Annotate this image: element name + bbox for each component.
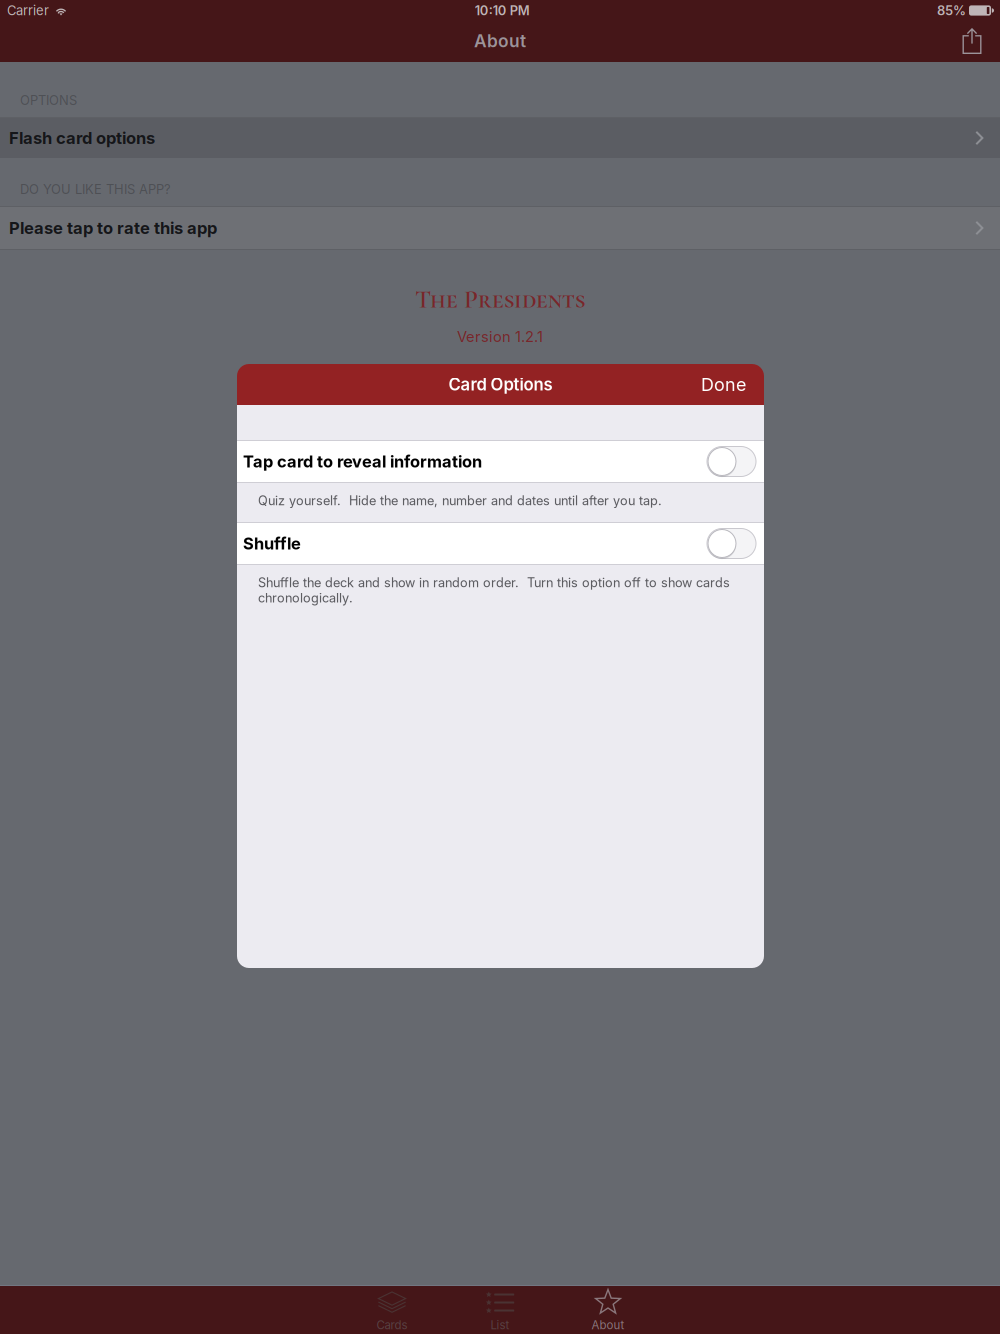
button[interactable]: Share xyxy=(949,22,995,60)
staticText: About xyxy=(474,30,526,51)
staticText: Version 1.2.1 xyxy=(457,328,543,345)
button[interactable]: Please tap to rate this app xyxy=(0,206,1000,249)
staticText: Shuffle xyxy=(243,534,301,553)
staticText: Cards xyxy=(376,1318,407,1332)
staticText: Flash card options xyxy=(9,128,155,148)
staticText: Done xyxy=(701,374,746,395)
staticText: 85% xyxy=(937,3,966,18)
staticText: Shuffle the deck and show in random orde… xyxy=(258,575,730,606)
button[interactable]: Shuffle xyxy=(237,523,764,564)
staticText: Quiz yourself. Hide the name, number and… xyxy=(258,493,662,508)
staticText: 10:10 PM xyxy=(475,3,530,18)
staticText: OPTIONS xyxy=(20,92,77,108)
staticText: Please tap to rate this app xyxy=(9,218,217,238)
staticText: DO YOU LIKE THIS APP? xyxy=(20,181,171,197)
staticText: Tap card to reveal information xyxy=(243,452,482,471)
staticText: Card Options xyxy=(448,374,552,395)
button[interactable]: List xyxy=(446,1288,554,1334)
button[interactable]: About xyxy=(554,1288,662,1334)
button[interactable]: Done xyxy=(691,366,756,403)
staticText: The Presidents xyxy=(415,284,585,315)
button[interactable]: Flash card options xyxy=(0,117,1000,158)
staticText: About xyxy=(591,1318,624,1332)
staticText: List xyxy=(490,1318,509,1332)
button[interactable]: Cards xyxy=(338,1288,446,1334)
staticText: Carrier xyxy=(7,3,49,18)
button[interactable]: Tap card to reveal information xyxy=(237,441,764,482)
